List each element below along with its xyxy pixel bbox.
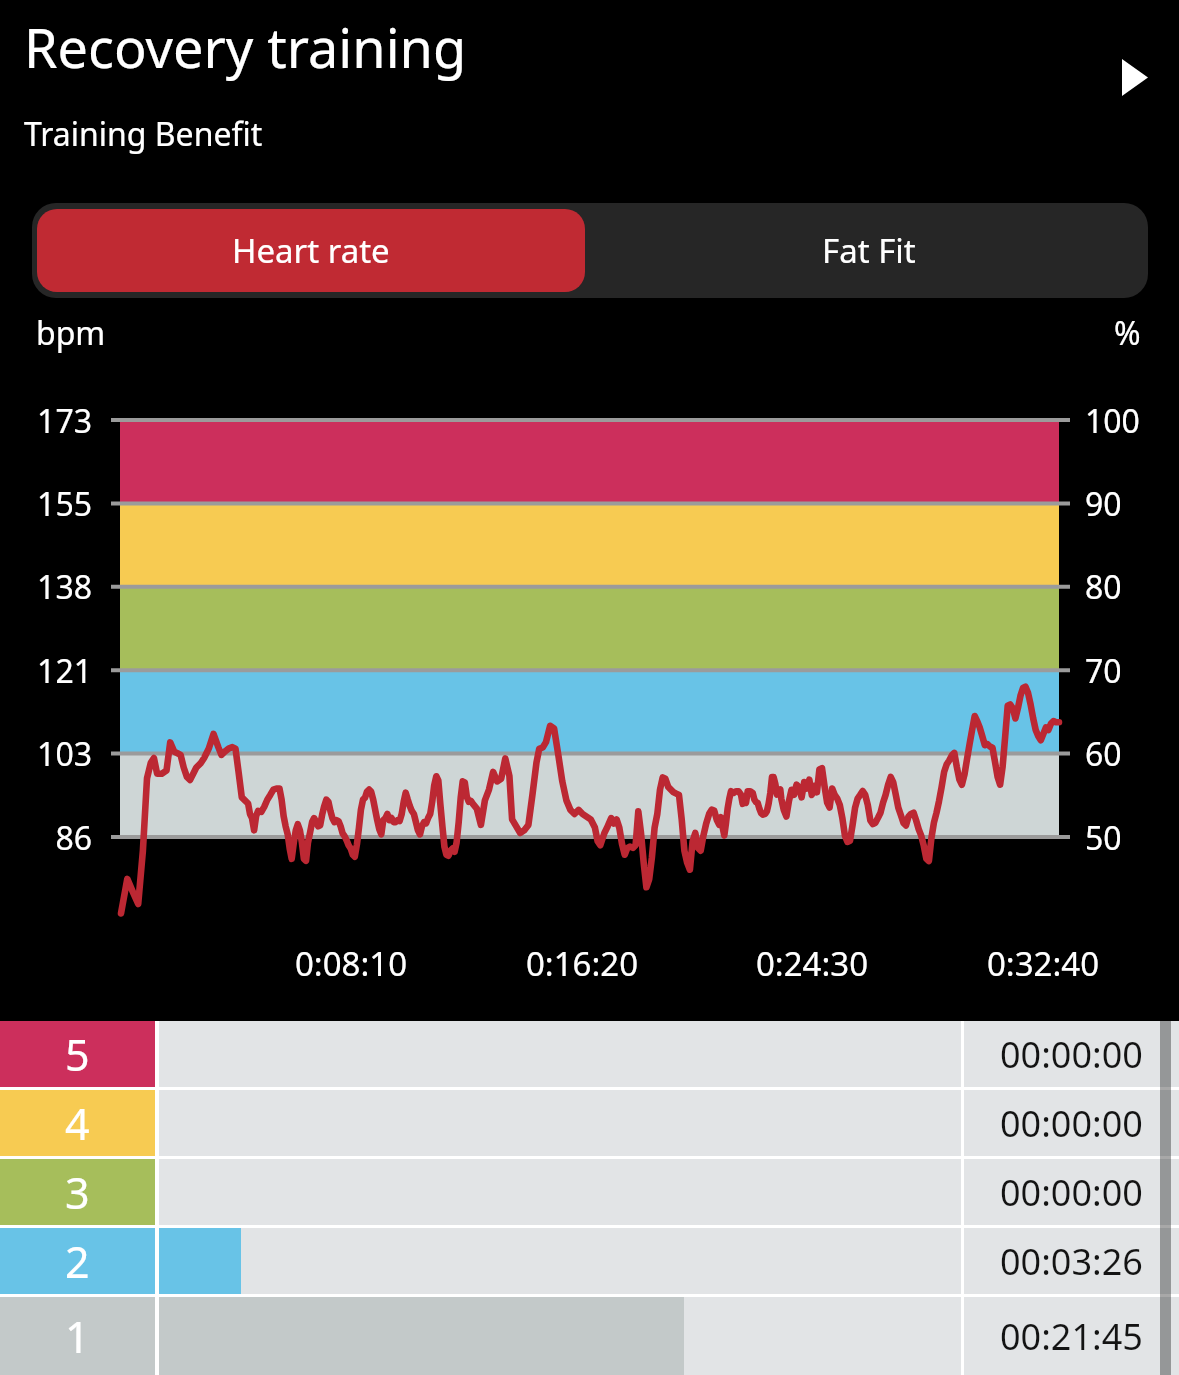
- staticText: 121: [0, 649, 92, 693]
- staticText: 0:32:40: [933, 941, 1153, 986]
- staticText: Fat Fit: [822, 228, 916, 273]
- button[interactable]: Play: [1095, 37, 1175, 117]
- staticText: 00:00:00: [1000, 1030, 1143, 1079]
- staticText: 155: [0, 482, 92, 526]
- staticText: 50: [1085, 816, 1179, 860]
- staticText: 90: [1085, 482, 1179, 526]
- button[interactable]: 4: [0, 1090, 1179, 1156]
- staticText: 0:08:10: [241, 941, 461, 986]
- staticText: 0:16:20: [472, 941, 692, 986]
- staticText: 103: [0, 732, 92, 776]
- staticText: %: [1114, 311, 1141, 355]
- staticText: Recovery training: [24, 10, 467, 84]
- button[interactable]: Heart rate: [37, 209, 585, 292]
- staticText: 60: [1085, 732, 1179, 776]
- button[interactable]: 5: [0, 1021, 1179, 1087]
- staticText: 80: [1085, 565, 1179, 609]
- staticText: 3: [65, 1163, 90, 1222]
- staticText: bpm: [36, 311, 106, 355]
- staticText: 2: [65, 1232, 90, 1291]
- staticText: 4: [65, 1094, 90, 1153]
- staticText: 00:03:26: [1000, 1237, 1143, 1286]
- staticText: 100: [1085, 399, 1179, 443]
- staticText: Training Benefit: [24, 112, 263, 156]
- button[interactable]: 2: [0, 1228, 1179, 1294]
- staticText: Heart rate: [232, 228, 390, 273]
- staticText: 70: [1085, 649, 1179, 693]
- staticText: 00:00:00: [1000, 1168, 1143, 1217]
- staticText: 00:21:45: [1000, 1312, 1143, 1361]
- button[interactable]: Fat Fit: [590, 203, 1148, 298]
- staticText: 00:00:00: [1000, 1099, 1143, 1148]
- staticText: 86: [0, 816, 92, 860]
- button[interactable]: 3: [0, 1159, 1179, 1225]
- staticText: 173: [0, 399, 92, 443]
- staticText: 1: [65, 1307, 90, 1366]
- staticText: 5: [65, 1025, 90, 1084]
- staticText: 138: [0, 565, 92, 609]
- button[interactable]: 1: [0, 1297, 1179, 1375]
- staticText: 0:24:30: [702, 941, 922, 986]
